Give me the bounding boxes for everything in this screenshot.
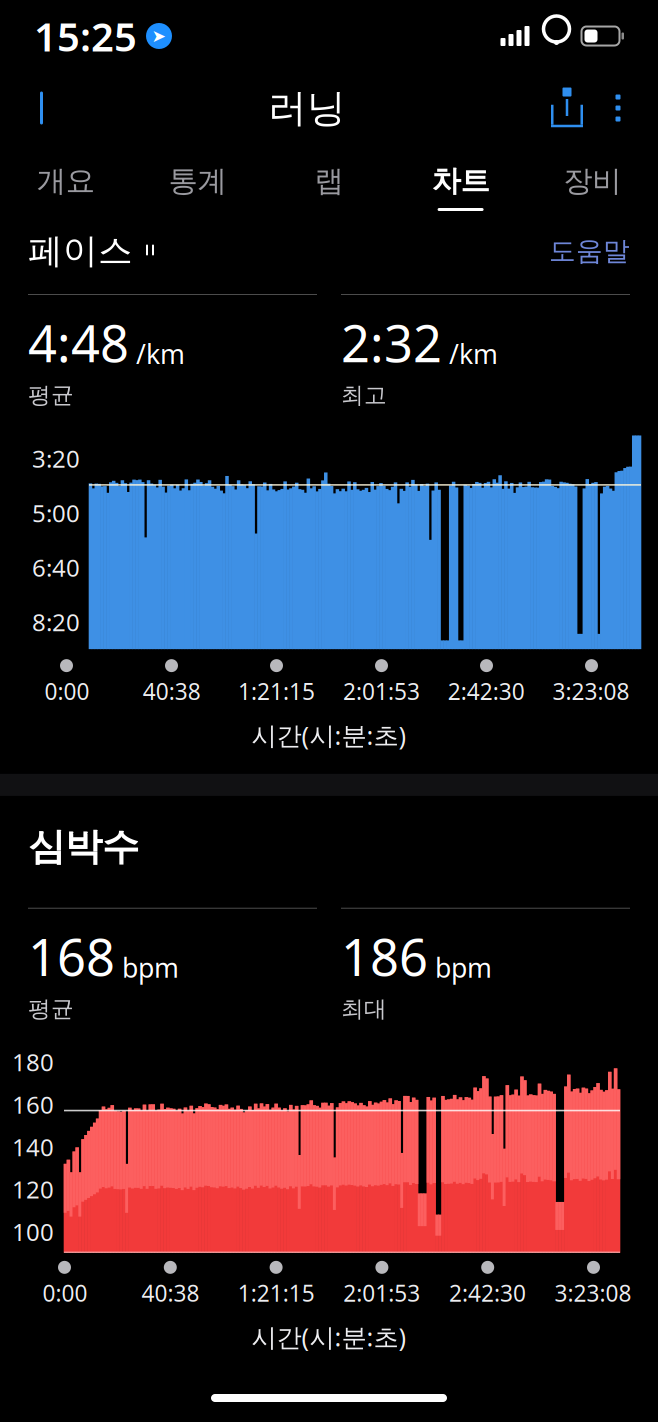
button[interactable]: 공유: [540, 81, 594, 135]
staticText: 최대: [341, 995, 387, 1023]
button[interactable]: 장비: [526, 149, 658, 217]
staticText: 러닝: [268, 84, 346, 132]
staticText: 개요: [37, 163, 95, 199]
staticText: 2:01:53: [343, 1278, 420, 1308]
staticText: ➤: [151, 26, 166, 46]
staticText: 2:32: [341, 309, 442, 376]
staticText: 시간(시:분:초): [251, 1320, 406, 1354]
staticText: 0:00: [44, 676, 89, 706]
staticText: 186: [341, 923, 428, 990]
staticText: 180: [12, 1046, 54, 1078]
staticText: 3:23:08: [552, 676, 629, 706]
staticText: 168: [28, 923, 115, 990]
staticText: 차트: [432, 163, 490, 199]
staticText: 2:01:53: [343, 676, 420, 706]
staticText: 100: [12, 1216, 54, 1248]
staticText: 1:21:15: [238, 676, 315, 706]
staticText: 140: [12, 1131, 54, 1163]
staticText: bpm: [122, 950, 179, 985]
staticText: 2:42:30: [449, 1278, 526, 1308]
staticText: 랩: [314, 163, 343, 199]
button[interactable]: 페이스: [28, 222, 159, 280]
staticText: 15:25: [34, 9, 137, 62]
button[interactable]: 랩: [263, 149, 395, 217]
button[interactable]: 뒤로: [16, 78, 74, 138]
staticText: 3:23:08: [554, 1278, 631, 1308]
staticText: /km: [136, 336, 185, 371]
staticText: 5:00: [32, 497, 80, 529]
staticText: 40:38: [143, 676, 201, 706]
staticText: 심박수: [28, 824, 139, 870]
staticText: 8:20: [32, 606, 80, 638]
staticText: 120: [12, 1173, 54, 1205]
staticText: 6:40: [32, 551, 80, 583]
button[interactable]: 더보기: [594, 83, 642, 133]
staticText: 최고: [341, 381, 387, 409]
staticText: 통계: [168, 163, 226, 199]
staticText: 도움말: [549, 235, 630, 267]
staticText: bpm: [435, 950, 492, 985]
staticText: 160: [12, 1088, 54, 1120]
button[interactable]: 통계: [132, 149, 263, 217]
staticText: 3:20: [32, 442, 80, 474]
staticText: 평균: [28, 381, 74, 409]
button[interactable]: 개요: [0, 149, 132, 217]
staticText: 장비: [563, 163, 621, 199]
staticText: 평균: [28, 995, 74, 1023]
button[interactable]: 도움말: [549, 227, 630, 275]
staticText: 0:00: [42, 1278, 87, 1308]
staticText: 4:48: [28, 309, 129, 376]
staticText: 40:38: [142, 1278, 200, 1308]
staticText: 2:42:30: [448, 676, 525, 706]
staticText: 시간(시:분:초): [251, 718, 406, 752]
staticText: 페이스: [28, 230, 133, 272]
staticText: 1:21:15: [238, 1278, 315, 1308]
staticText: /km: [449, 336, 498, 371]
button[interactable]: 차트: [395, 149, 526, 217]
